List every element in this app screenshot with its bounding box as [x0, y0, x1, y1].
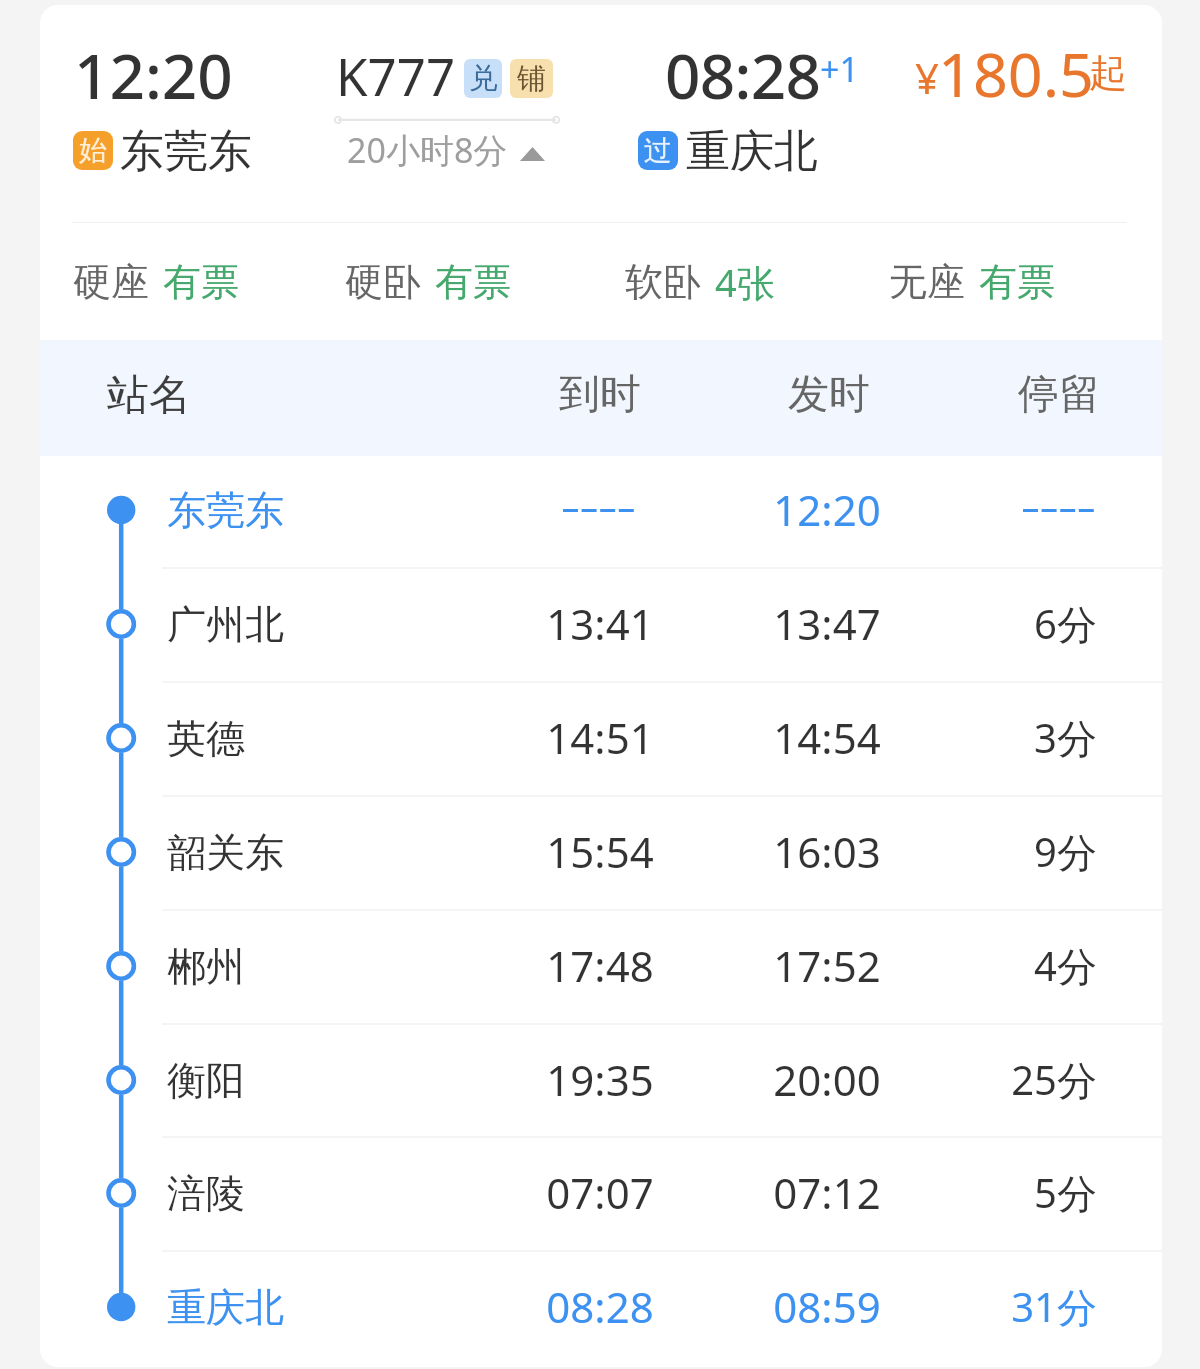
staticText: 东莞东: [167, 486, 467, 535]
staticText: ¥: [915, 49, 975, 106]
staticText: 25分: [897, 1052, 1097, 1107]
staticText: 4张: [715, 256, 775, 308]
staticText: 07:07: [500, 1164, 700, 1221]
button[interactable]: 广州北: [40, 567, 1162, 681]
button[interactable]: 硬卧: [298, 223, 558, 340]
staticText: 31分: [897, 1279, 1097, 1334]
button[interactable]: 东莞东: [40, 453, 1162, 567]
staticText: 兑: [469, 60, 498, 97]
staticText: 20:00: [727, 1051, 927, 1108]
button[interactable]: Collapse schedule: [340, 123, 552, 169]
staticText: 过: [644, 133, 672, 168]
button[interactable]: 无座: [842, 223, 1102, 340]
staticText: 15:54: [500, 823, 700, 880]
button[interactable]: 重庆北: [40, 1250, 1162, 1364]
button[interactable]: 硬座: [40, 223, 286, 340]
staticText: 07:12: [727, 1164, 927, 1221]
staticText: 起: [1089, 49, 1162, 97]
staticText: 19:35: [500, 1051, 700, 1108]
staticText: 有票: [979, 258, 1055, 306]
staticText: 12:20: [74, 33, 374, 117]
staticText: 20小时8分: [347, 127, 547, 173]
staticText: 软卧: [625, 258, 701, 306]
button[interactable]: 郴州: [40, 909, 1162, 1023]
button[interactable]: 12:20: [40, 5, 1162, 223]
staticText: 发时: [729, 369, 929, 421]
staticText: 14:51: [500, 709, 700, 766]
staticText: 有票: [435, 258, 511, 306]
staticText: 180.5: [938, 32, 1162, 115]
staticText: 始: [79, 133, 107, 168]
staticText: 重庆北: [167, 1283, 467, 1332]
staticText: 3分: [897, 710, 1097, 765]
button[interactable]: 涪陵: [40, 1136, 1162, 1250]
button[interactable]: 韶关东: [40, 795, 1162, 909]
button[interactable]: 衡阳: [40, 1023, 1162, 1137]
staticText: 13:41: [500, 595, 700, 652]
staticText: 郴州: [167, 942, 467, 991]
staticText: 14:54: [727, 709, 927, 766]
staticText: 17:48: [500, 937, 700, 994]
staticText: 08:59: [727, 1278, 927, 1335]
staticText: 6分: [897, 596, 1097, 651]
staticText: 韶关东: [167, 828, 467, 877]
button[interactable]: 软卧: [570, 223, 830, 340]
staticText: +1: [820, 46, 920, 92]
staticText: 英德: [167, 714, 467, 763]
button[interactable]: 英德: [40, 681, 1162, 795]
staticText: 有票: [163, 258, 239, 306]
staticText: 12:20: [727, 481, 927, 538]
staticText: 无座: [889, 258, 965, 306]
staticText: K777: [336, 41, 536, 110]
staticText: 停留: [900, 369, 1100, 421]
staticText: 涪陵: [167, 1169, 467, 1218]
staticText: 5分: [897, 1165, 1097, 1220]
staticText: 重庆北: [686, 124, 986, 179]
staticText: 4分: [897, 938, 1097, 993]
staticText: 08:28: [665, 33, 965, 117]
staticText: 铺: [517, 60, 546, 97]
staticText: 08:28: [500, 1278, 700, 1335]
staticText: 硬卧: [345, 258, 421, 306]
staticText: 到时: [500, 369, 700, 421]
staticText: 硬座: [73, 258, 149, 306]
staticText: 9分: [897, 824, 1097, 879]
staticText: 16:03: [727, 823, 927, 880]
staticText: 东莞东: [120, 124, 420, 179]
staticText: 衡阳: [167, 1056, 467, 1105]
staticText: 站名: [107, 369, 307, 422]
staticText: 13:47: [727, 595, 927, 652]
staticText: 广州北: [167, 600, 467, 649]
staticText: 17:52: [727, 937, 927, 994]
